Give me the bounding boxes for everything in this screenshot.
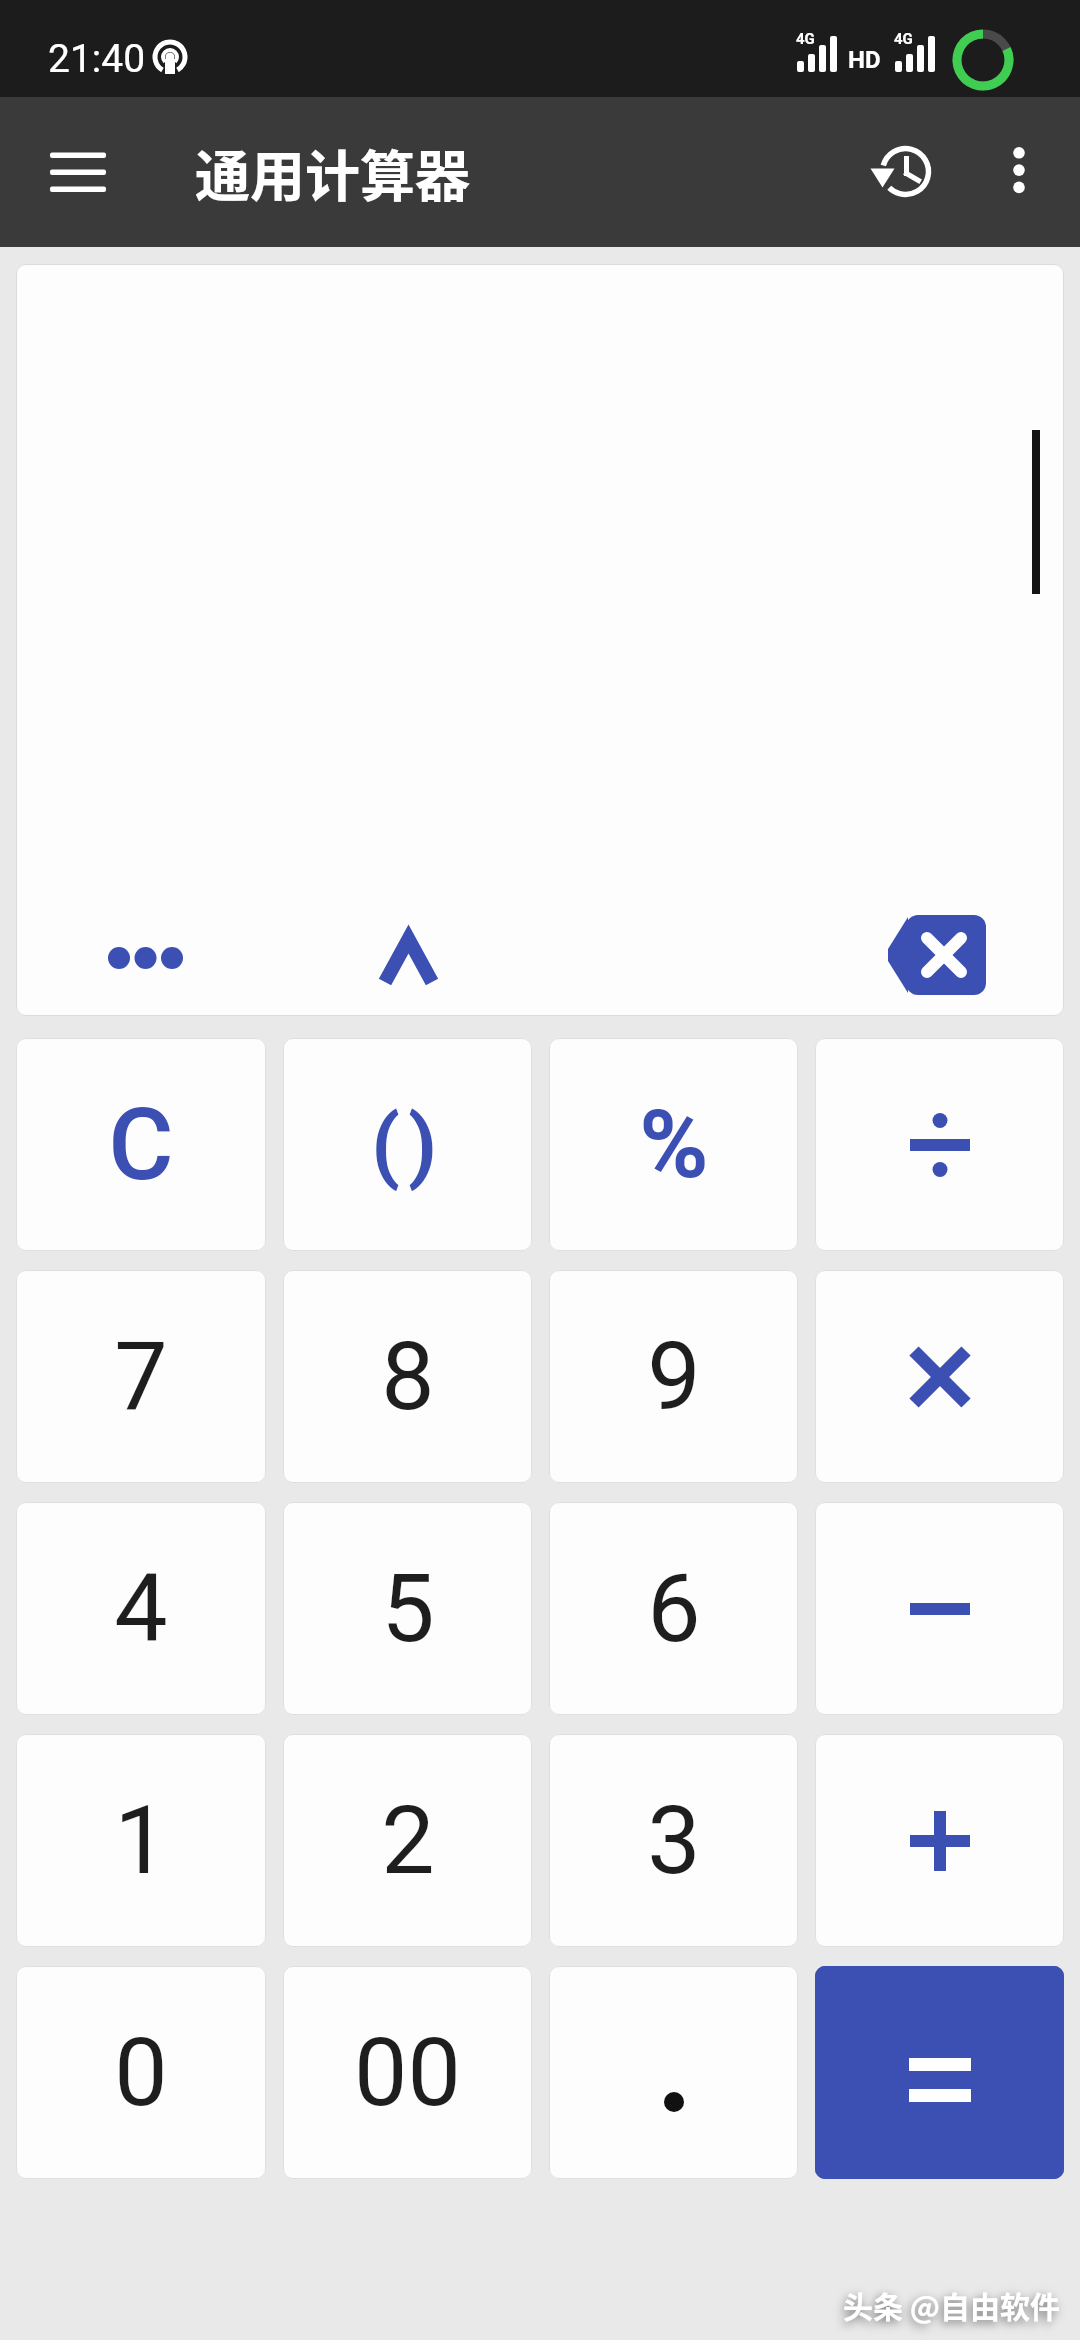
staticText: 7 [114,1321,168,1432]
button[interactable] [861,129,946,214]
button[interactable] [350,914,466,1002]
button[interactable]: () [283,1038,532,1251]
staticText: HD [848,46,881,74]
button[interactable]: 9 [549,1270,798,1483]
button[interactable]: 4 [16,1502,266,1715]
staticText: 6 [647,1553,701,1664]
button[interactable] [815,1270,1064,1483]
staticText: 9 [647,1321,701,1432]
button[interactable]: % [549,1038,798,1251]
staticText: 4G [796,30,815,48]
button[interactable]: 2 [283,1734,532,1947]
staticText: 0 [114,2017,168,2128]
button[interactable] [815,1038,1064,1251]
staticText: % [639,1090,709,1200]
button[interactable] [815,1502,1064,1715]
button[interactable] [28,128,128,216]
button[interactable]: 5 [283,1502,532,1715]
button[interactable]: 8 [283,1270,532,1483]
button[interactable]: 6 [549,1502,798,1715]
button[interactable] [815,1966,1064,2179]
staticText: 4 [114,1553,168,1664]
button[interactable] [978,129,1060,211]
staticText: 4G [894,30,913,48]
button[interactable]: C [16,1038,266,1251]
staticText: () [371,1097,445,1193]
button[interactable] [815,1734,1064,1947]
staticText: 00 [354,2017,461,2128]
staticText: 2 [381,1785,435,1896]
button[interactable] [859,899,1013,1011]
button[interactable] [80,922,210,994]
staticText: 8 [381,1321,435,1432]
staticText: 1 [114,1785,168,1896]
button[interactable]: 1 [16,1734,266,1947]
staticText: 头条 @自由软件 [843,2283,1061,2326]
staticText: 21:40 [48,36,146,82]
staticText: 3 [647,1785,701,1896]
button[interactable]: 00 [283,1966,532,2179]
button[interactable]: 7 [16,1270,266,1483]
button[interactable]: 0 [16,1966,266,2179]
staticText: 通用计算器 [195,132,471,212]
staticText: C [108,1086,174,1203]
staticText: 5 [381,1553,435,1664]
button[interactable]: 3 [549,1734,798,1947]
button[interactable] [549,1966,798,2179]
